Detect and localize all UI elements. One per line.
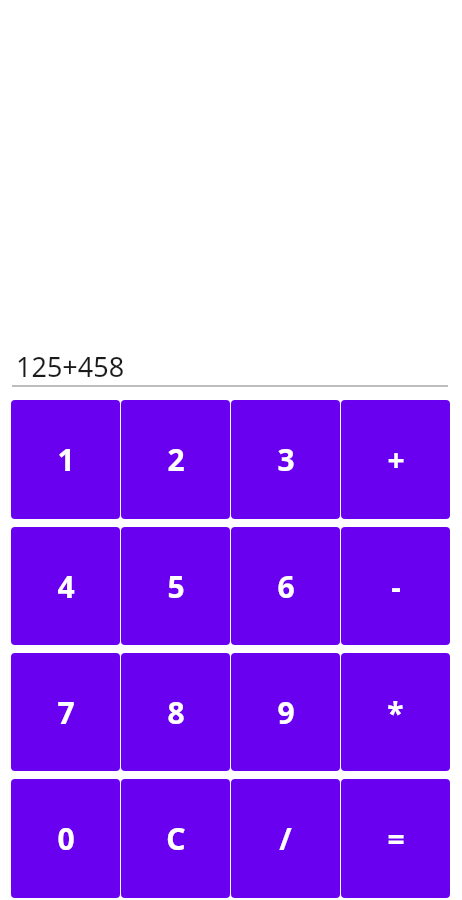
- button[interactable]: 8: [121, 653, 230, 771]
- staticText: 8: [167, 692, 185, 733]
- staticText: /: [279, 818, 292, 859]
- staticText: 1: [57, 439, 75, 480]
- staticText: 3: [277, 439, 295, 480]
- button[interactable]: 4: [11, 527, 120, 645]
- staticText: *: [387, 692, 404, 733]
- staticText: 2: [167, 439, 185, 480]
- staticText: 6: [277, 566, 295, 607]
- button[interactable]: +: [341, 400, 450, 519]
- button[interactable]: 3: [231, 400, 340, 519]
- button[interactable]: -: [341, 527, 450, 645]
- button[interactable]: 1: [11, 400, 120, 519]
- button[interactable]: /: [231, 779, 340, 898]
- button[interactable]: 2: [121, 400, 230, 519]
- staticText: 125+458: [16, 348, 125, 385]
- button[interactable]: 5: [121, 527, 230, 645]
- staticText: C: [166, 818, 186, 859]
- button[interactable]: =: [341, 779, 450, 898]
- button[interactable]: 7: [11, 653, 120, 771]
- staticText: 4: [57, 566, 75, 607]
- button[interactable]: 0: [11, 779, 120, 898]
- staticText: =: [387, 818, 405, 859]
- staticText: 0: [57, 818, 75, 859]
- staticText: +: [387, 439, 405, 480]
- staticText: 9: [277, 692, 295, 733]
- staticText: 5: [167, 566, 185, 607]
- button[interactable]: C: [121, 779, 230, 898]
- button[interactable]: *: [341, 653, 450, 771]
- button[interactable]: 9: [231, 653, 340, 771]
- button[interactable]: 6: [231, 527, 340, 645]
- staticText: 7: [57, 692, 75, 733]
- staticText: -: [391, 566, 401, 607]
